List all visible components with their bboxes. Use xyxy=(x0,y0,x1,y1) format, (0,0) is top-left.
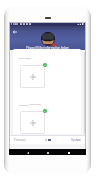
staticText: Resume xyxy=(19,103,29,106)
button[interactable]: Update xyxy=(70,137,82,143)
button[interactable]: Add file xyxy=(20,111,45,134)
button[interactable]: Add file xyxy=(20,65,45,88)
staticText: Update xyxy=(71,138,81,142)
button[interactable]: Profile photo xyxy=(41,32,55,46)
staticText: Previous xyxy=(14,138,26,142)
staticText: 11:30 xyxy=(11,22,18,26)
button[interactable]: Home xyxy=(45,150,50,155)
button[interactable]: Recents xyxy=(66,150,71,155)
button[interactable]: Back xyxy=(25,150,30,155)
staticText: (upload pdf) xyxy=(29,103,42,106)
button[interactable]: Back xyxy=(11,28,19,36)
staticText: My Image xyxy=(19,56,31,59)
staticText: Please fill the information below xyxy=(26,46,69,50)
button[interactable]: Previous xyxy=(13,137,27,143)
